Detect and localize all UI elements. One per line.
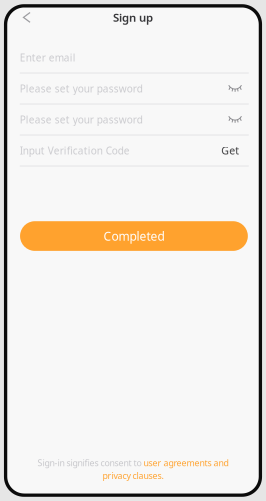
- staticText: Sign up: [113, 10, 153, 25]
- button[interactable]: Get: [221, 143, 239, 157]
- staticText: privacy clauses.: [102, 470, 163, 481]
- staticText: Please set your password: [20, 113, 143, 126]
- staticText: Sign-in signifies consent to: [37, 457, 143, 469]
- button[interactable]: Back: [14, 6, 39, 28]
- staticText: Enter email: [20, 51, 76, 64]
- staticText: Please set your password: [20, 82, 143, 95]
- staticText: Completed: [103, 228, 164, 244]
- staticText: Input Verification Code: [20, 144, 130, 157]
- staticText: user agreements and: [143, 457, 228, 469]
- button[interactable]: Completed: [20, 221, 248, 251]
- button[interactable]: Show password: [228, 85, 242, 92]
- button[interactable]: Confirm show password: [228, 116, 242, 123]
- button[interactable]: user agreements and: [143, 457, 228, 469]
- staticText: Get: [221, 143, 239, 157]
- button[interactable]: privacy clauses.: [102, 470, 163, 481]
